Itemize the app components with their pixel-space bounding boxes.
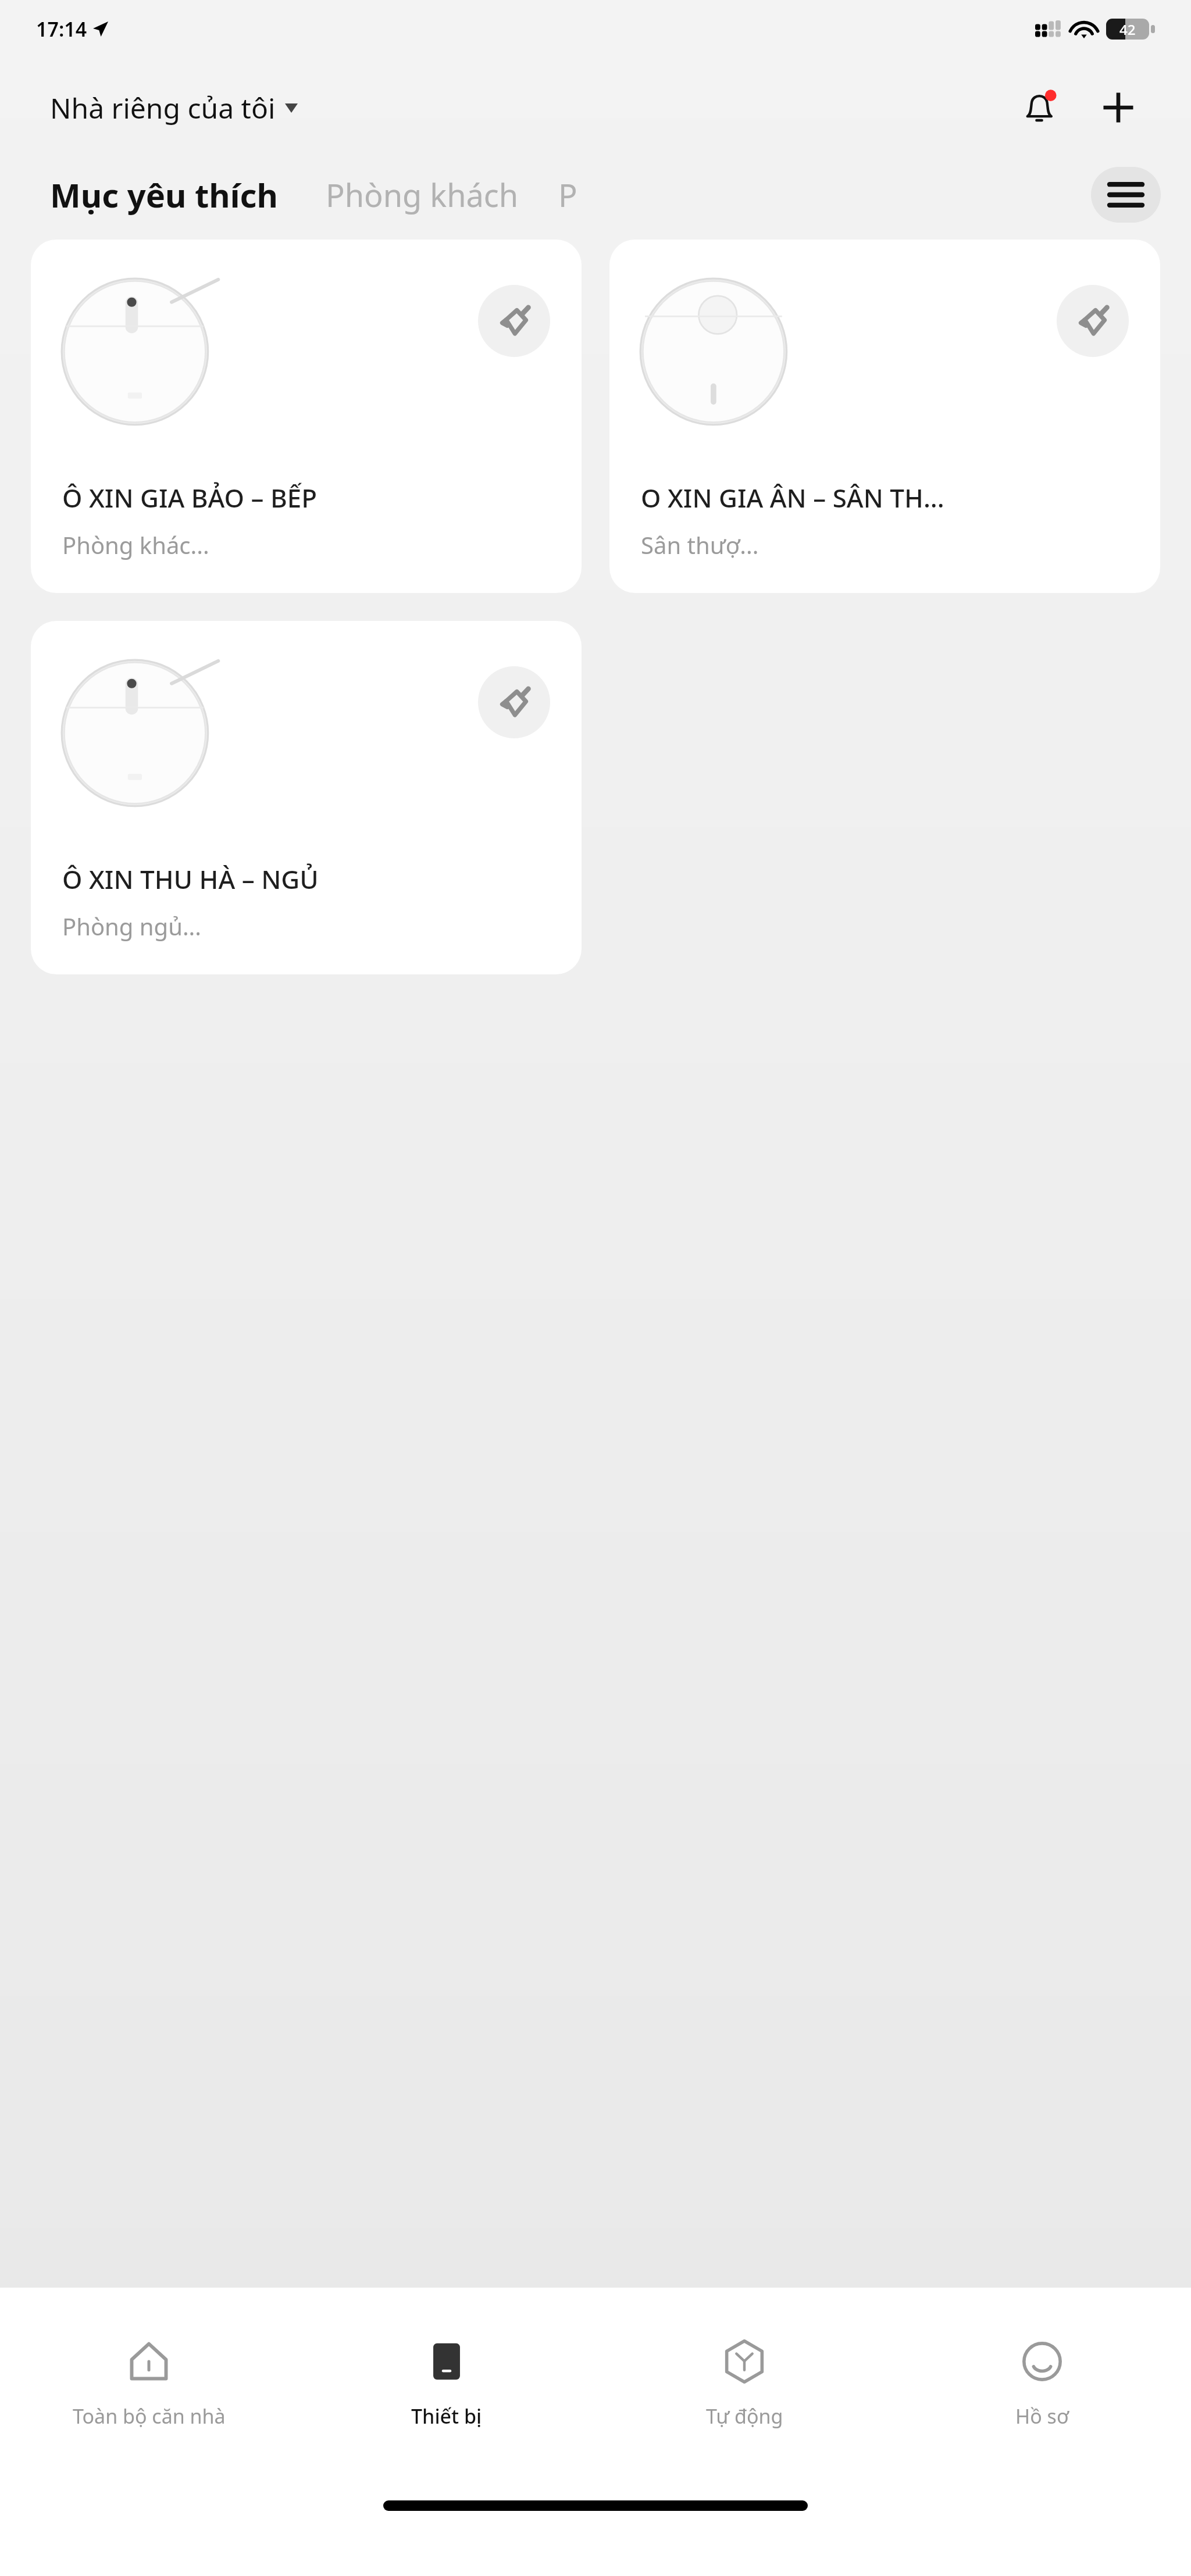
button[interactable]: Phòng khách [326, 173, 519, 216]
button[interactable]: P [558, 173, 577, 216]
button[interactable]: Clean [31, 240, 582, 593]
button[interactable]: Thiết bị [298, 2288, 595, 2479]
staticText: Phòng khác... [62, 529, 209, 560]
staticText: Sân thượ... [641, 529, 759, 560]
staticText: Thiết bị [411, 2403, 482, 2429]
button[interactable]: Nhà riêng của tôi [50, 82, 298, 134]
button[interactable]: Clean [609, 240, 1160, 593]
staticText: Hồ sơ [1015, 2403, 1069, 2429]
button[interactable]: Mục yêu thích [50, 173, 278, 217]
button[interactable]: Clean [478, 285, 550, 357]
button[interactable]: Rooms menu [1091, 167, 1161, 223]
staticText: Toàn bộ căn nhà [73, 2403, 226, 2429]
staticText: Ô XIN THU HÀ – NGỦ [62, 862, 319, 896]
staticText: 42 [1119, 20, 1136, 39]
staticText: O XIN GIA ÂN – SÂN TH... [641, 480, 944, 515]
staticText: Tự động [706, 2403, 783, 2429]
staticText: 17:14 [36, 16, 87, 42]
button[interactable]: Toàn bộ căn nhà [0, 2288, 298, 2479]
staticText: Ô XIN GIA BẢO – BẾP [62, 480, 318, 515]
staticText: Phòng ngủ... [62, 910, 202, 942]
staticText: Nhà riêng của tôi [50, 89, 276, 127]
button[interactable]: Add device [1086, 76, 1150, 140]
button[interactable]: Hồ sơ [893, 2288, 1191, 2479]
button[interactable]: Clean [478, 666, 550, 738]
button[interactable]: Clean [1057, 285, 1129, 357]
button[interactable]: Notifications [1007, 76, 1071, 140]
button[interactable]: Tự động [595, 2288, 893, 2479]
button[interactable]: Clean [31, 621, 582, 974]
